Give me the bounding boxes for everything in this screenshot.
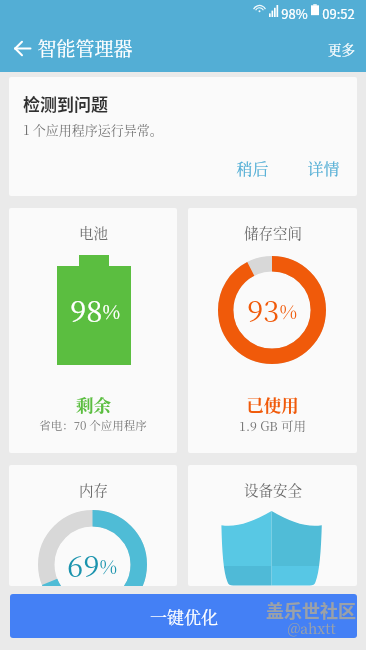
button[interactable]: 电池 bbox=[9, 208, 177, 453]
staticText: 设备安全 bbox=[244, 479, 302, 500]
staticText: 省电：70 个应用程序 bbox=[39, 417, 147, 434]
staticText: @ahxtt bbox=[287, 618, 336, 638]
staticText: 已使用 bbox=[246, 392, 299, 417]
button[interactable]: 稍后 bbox=[227, 152, 278, 185]
staticText: 98% bbox=[70, 289, 121, 331]
staticText: 1.9 GB 可用 bbox=[239, 417, 306, 435]
staticText: 剩余 bbox=[76, 392, 111, 417]
staticText: 一键优化 bbox=[150, 604, 218, 628]
button[interactable]: 更多 bbox=[317, 27, 366, 70]
button[interactable]: Back bbox=[0, 26, 44, 70]
staticText: 盖乐世社区 bbox=[266, 597, 356, 623]
staticText: 智能管理器 bbox=[37, 34, 133, 61]
staticText: 储存空间 bbox=[244, 222, 302, 243]
staticText: 详情 bbox=[307, 157, 340, 180]
button[interactable]: 内存 bbox=[9, 465, 177, 586]
staticText: 内存 bbox=[79, 479, 108, 500]
button[interactable]: 一键优化 bbox=[10, 594, 357, 638]
button[interactable]: 详情 bbox=[298, 152, 349, 185]
staticText: 更多 bbox=[328, 39, 355, 58]
staticText: 稍后 bbox=[236, 157, 269, 180]
staticText: 69% bbox=[67, 544, 118, 586]
staticText: 98% bbox=[281, 4, 308, 23]
staticText: 09:52 bbox=[322, 4, 355, 23]
staticText: 93% bbox=[247, 289, 298, 331]
button[interactable]: 设备安全 bbox=[188, 465, 357, 586]
staticText: 检测到问题 bbox=[23, 91, 108, 116]
button[interactable]: 储存空间 bbox=[188, 208, 357, 453]
staticText: 电池 bbox=[79, 222, 108, 243]
staticText: 1 个应用程序运行异常。 bbox=[23, 120, 163, 139]
